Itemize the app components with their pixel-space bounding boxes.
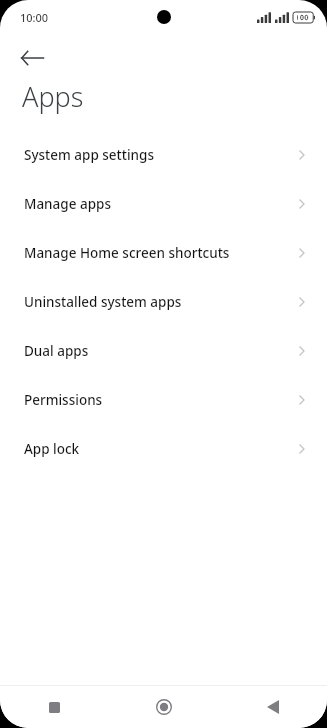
button[interactable]: Recents [0,686,109,728]
button[interactable]: System app settings [0,130,327,179]
staticText: Apps [22,78,84,115]
staticText: Manage apps [24,195,297,213]
staticText: Permissions [24,391,297,409]
button[interactable]: Uninstalled system apps [0,277,327,326]
button[interactable]: Permissions [0,375,327,424]
button[interactable]: App lock [0,424,327,473]
button[interactable]: Manage apps [0,179,327,228]
staticText: App lock [24,440,297,458]
staticText: Uninstalled system apps [24,293,297,311]
button[interactable]: Home [109,686,218,728]
staticText: 10:00 [20,10,49,25]
staticText: System app settings [24,146,297,164]
button[interactable]: Back [10,36,54,80]
button[interactable]: Dual apps [0,326,327,375]
staticText: Manage Home screen shortcuts [24,244,297,262]
button[interactable]: Manage Home screen shortcuts [0,228,327,277]
staticText: Dual apps [24,342,297,360]
button[interactable]: Back [218,686,327,728]
